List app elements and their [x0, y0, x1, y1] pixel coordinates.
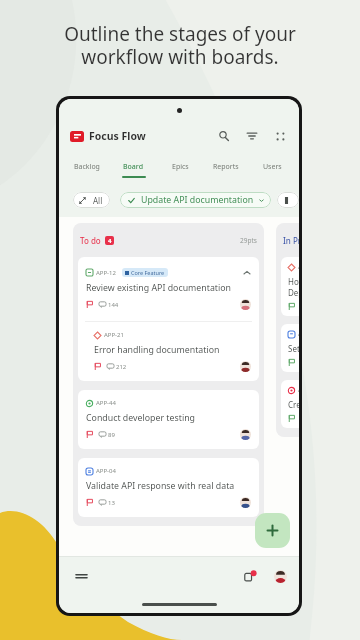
staticText: Review existing API documentation	[86, 282, 232, 294]
staticText: Outline the stages of your workflow with…	[64, 21, 296, 69]
staticText: 212	[116, 363, 127, 371]
button[interactable]: Add task	[255, 513, 290, 548]
staticText: Users	[263, 162, 282, 172]
button[interactable]: APP-18	[281, 324, 299, 372]
button[interactable]: Search	[214, 126, 234, 146]
staticText: Create design tokens	[288, 399, 299, 410]
staticText: Reports	[213, 162, 239, 172]
staticText: APP-07	[298, 263, 299, 271]
staticText: Focus Flow	[89, 129, 146, 143]
staticText: Validate API response with real data	[86, 480, 235, 492]
button[interactable]: All	[73, 192, 110, 208]
staticText: Update API documentation	[141, 194, 254, 206]
button[interactable]: APP-31	[281, 380, 299, 428]
staticText: 29pts	[240, 236, 257, 245]
button[interactable]: APP-12	[78, 257, 259, 381]
staticText: Backlog	[74, 162, 100, 172]
staticText: Set up CI pipeline	[288, 343, 299, 354]
staticText: Core Feature	[131, 269, 165, 276]
staticText: To do	[80, 235, 101, 246]
staticText: APP-04	[96, 467, 116, 475]
button[interactable]: Fullscreen	[270, 126, 290, 146]
staticText: APP-12	[96, 269, 116, 277]
button[interactable]: Epics	[157, 151, 203, 183]
button[interactable]: Filter	[242, 126, 262, 146]
staticText: APP-44	[96, 399, 116, 407]
staticText: APP-18	[298, 330, 299, 338]
staticText: 89	[108, 431, 115, 439]
button[interactable]: Update API documentation	[120, 192, 271, 208]
staticText: APP-21	[104, 331, 124, 339]
button[interactable]: Users	[249, 151, 295, 183]
staticText: Conduct developer testing	[86, 412, 196, 424]
staticText: In Progress	[283, 235, 299, 246]
button[interactable]: More filters	[277, 192, 299, 208]
button[interactable]: Backlog	[63, 151, 110, 183]
staticText: Epics	[172, 162, 189, 172]
staticText: 144	[108, 301, 119, 309]
staticText: All	[93, 195, 103, 206]
staticText: APP-31	[298, 386, 299, 394]
staticText: Board	[123, 162, 144, 172]
button[interactable]: Board	[110, 151, 157, 183]
staticText: 13	[108, 499, 115, 507]
button[interactable]: Reports	[203, 151, 249, 183]
button[interactable]: Profile	[273, 569, 288, 584]
button[interactable]: APP-44	[78, 390, 259, 449]
staticText: Error handling documentation	[94, 344, 220, 356]
button[interactable]: Menu	[72, 567, 90, 585]
staticText: Hotfix sprint Deployment plan	[288, 276, 299, 298]
button[interactable]: APP-07	[281, 257, 299, 316]
button[interactable]: APP-04	[78, 458, 259, 517]
staticText: 4	[108, 237, 112, 245]
button[interactable]: Notifications	[241, 567, 259, 585]
